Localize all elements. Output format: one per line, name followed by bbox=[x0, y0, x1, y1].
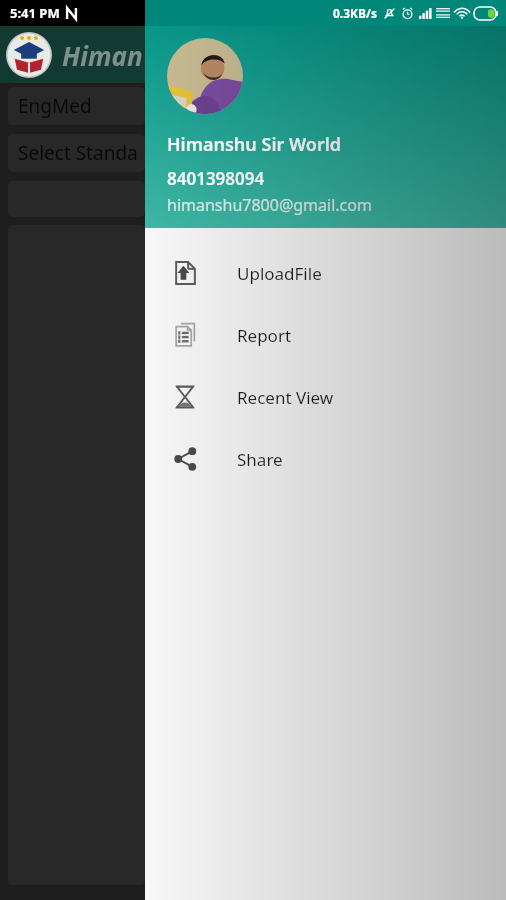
staticText: 8401398094 bbox=[167, 167, 265, 190]
button[interactable]: Share bbox=[145, 428, 506, 490]
staticText: EngMed bbox=[18, 93, 92, 119]
staticText: himanshu7800@gmail.com bbox=[167, 194, 372, 216]
staticText: UploadFile bbox=[237, 262, 322, 285]
staticText: 0.3KB/s bbox=[333, 5, 378, 21]
staticText: Share bbox=[237, 448, 283, 471]
button[interactable]: Select Standa bbox=[8, 134, 145, 172]
staticText: Himans bbox=[62, 38, 145, 73]
button[interactable]: Profile photo bbox=[167, 38, 243, 114]
staticText: Himanshu Sir World bbox=[167, 132, 342, 157]
button[interactable]: Recent View bbox=[145, 366, 506, 428]
staticText: Recent View bbox=[237, 386, 334, 409]
button[interactable]: UploadFile bbox=[145, 242, 506, 304]
button[interactable]: EngMed bbox=[8, 87, 145, 125]
button[interactable]: Report bbox=[145, 304, 506, 366]
staticText: 5:41 PM bbox=[10, 4, 60, 22]
staticText: Report bbox=[237, 324, 292, 347]
staticText: Select Standa bbox=[18, 140, 138, 166]
